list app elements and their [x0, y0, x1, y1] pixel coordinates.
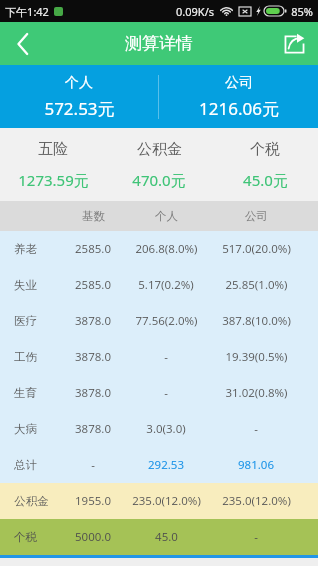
staticText: 公司	[245, 209, 268, 223]
button[interactable]: 失业	[0, 267, 318, 303]
staticText: 19.39(0.5%)	[225, 349, 288, 365]
staticText: 387.8(10.0%)	[222, 313, 291, 329]
staticText: 235.0(12.0%)	[222, 493, 291, 509]
staticText: 公积金	[14, 494, 49, 508]
staticText: 个税	[250, 140, 280, 159]
staticText: 总计	[14, 458, 37, 472]
button[interactable]: 公司	[159, 65, 318, 128]
staticText: -	[91, 457, 95, 473]
staticText: 个人	[155, 209, 178, 223]
staticText: 572.53元	[44, 97, 115, 120]
button[interactable]: 个人	[0, 65, 158, 128]
staticText: 5.17(0.2%)	[138, 277, 194, 293]
staticText: 测算详情	[125, 33, 193, 54]
button[interactable]: 个税	[212, 128, 318, 201]
staticText: 2585.0	[75, 241, 111, 257]
staticText: 206.8(8.0%)	[135, 241, 198, 257]
staticText: 公积金	[137, 140, 182, 159]
staticText: -	[254, 421, 258, 437]
staticText: 85%	[291, 4, 313, 19]
staticText: 3878.0	[75, 313, 111, 329]
button[interactable]: 个税	[0, 519, 318, 555]
staticText: 3878.0	[75, 349, 111, 365]
staticText: 1273.59元	[18, 170, 89, 190]
staticText: 五险	[38, 140, 68, 159]
staticText: 医疗	[14, 314, 37, 328]
staticText: 45.0	[155, 529, 178, 545]
staticText: 3.0(3.0)	[146, 421, 186, 437]
staticText: 981.06	[238, 457, 274, 473]
button[interactable]: 总计	[0, 447, 318, 483]
staticText: 31.02(0.8%)	[225, 385, 288, 401]
staticText: 5000.0	[75, 529, 111, 545]
staticText: 工伤	[14, 350, 37, 364]
staticText: 77.56(2.0%)	[135, 313, 198, 329]
staticText: 2585.0	[75, 277, 111, 293]
staticText: 470.0元	[132, 170, 186, 190]
staticText: -	[164, 385, 168, 401]
staticText: -	[254, 529, 258, 545]
staticText: 下午1:42	[5, 4, 49, 19]
button[interactable]: 生育	[0, 375, 318, 411]
staticText: 3878.0	[75, 421, 111, 437]
staticText: 生育	[14, 386, 37, 400]
staticText: -	[164, 349, 168, 365]
staticText: 养老	[14, 242, 37, 256]
staticText: 基数	[82, 209, 105, 223]
staticText: 大病	[14, 422, 37, 436]
staticText: 235.0(12.0%)	[132, 493, 201, 509]
staticText: 0.09K/s	[176, 4, 214, 19]
staticText: 1955.0	[75, 493, 111, 509]
button[interactable]: 养老	[0, 231, 318, 267]
staticText: 25.85(1.0%)	[225, 277, 288, 293]
staticText: 个人	[65, 74, 93, 92]
staticText: 公司	[225, 74, 253, 92]
button[interactable]: 五险	[0, 128, 106, 201]
button[interactable]: 公积金	[106, 128, 212, 201]
button[interactable]: Share	[270, 22, 318, 65]
button[interactable]: 医疗	[0, 303, 318, 339]
button[interactable]: 大病	[0, 411, 318, 447]
staticText: 292.53	[148, 457, 184, 473]
button[interactable]: 工伤	[0, 339, 318, 375]
staticText: 517.0(20.0%)	[222, 241, 291, 257]
staticText: 个税	[14, 530, 37, 544]
staticText: 1216.06元	[199, 97, 279, 120]
staticText: 3878.0	[75, 385, 111, 401]
staticText: 失业	[14, 278, 37, 292]
button[interactable]: 公积金	[0, 483, 318, 519]
button[interactable]: Back	[0, 22, 46, 65]
staticText: 45.0元	[243, 170, 288, 190]
